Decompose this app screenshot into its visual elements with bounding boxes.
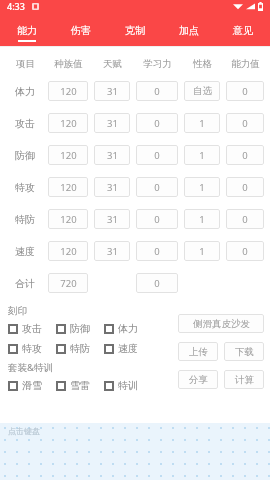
button[interactable]: 滑雪	[8, 379, 56, 392]
staticText: 下载	[235, 346, 254, 358]
staticText: 0	[242, 149, 248, 162]
staticText: 120	[60, 117, 77, 130]
button[interactable]: 特训	[104, 379, 152, 392]
staticText: 能力值	[231, 58, 260, 70]
staticText: 0	[154, 117, 160, 130]
button[interactable]: 0	[136, 273, 178, 293]
button[interactable]: 31	[94, 145, 130, 165]
button[interactable]: 720	[48, 273, 88, 293]
button[interactable]: 上传	[178, 342, 218, 361]
button[interactable]: 加点	[162, 19, 216, 46]
button[interactable]: 0	[226, 81, 264, 101]
button[interactable]: 1	[184, 209, 220, 229]
staticText: 31	[107, 149, 118, 162]
staticText: 31	[107, 213, 118, 226]
staticText: 0	[154, 245, 160, 258]
button[interactable]: 速度	[104, 342, 152, 355]
button[interactable]: 31	[94, 241, 130, 261]
button[interactable]: 31	[94, 177, 130, 197]
staticText: 侧滑真皮沙发	[193, 318, 250, 330]
staticText: 0	[242, 245, 248, 258]
staticText: 上传	[189, 346, 208, 358]
staticText: 克制	[125, 24, 145, 37]
staticText: 项目	[16, 58, 35, 70]
staticText: 120	[60, 213, 77, 226]
staticText: 点击键盘	[8, 426, 40, 436]
staticText: 0	[154, 277, 160, 290]
button[interactable]: 0	[136, 145, 178, 165]
staticText: 0	[154, 181, 160, 194]
staticText: 120	[60, 85, 77, 98]
staticText: 特训	[118, 379, 138, 392]
button[interactable]: 1	[184, 177, 220, 197]
button[interactable]: 0	[136, 241, 178, 261]
button[interactable]: 1	[184, 145, 220, 165]
staticText: 加点	[179, 24, 199, 37]
staticText: 速度	[118, 342, 138, 355]
button[interactable]: 0	[136, 177, 178, 197]
staticText: 分享	[189, 374, 208, 386]
staticText: 0	[242, 117, 248, 130]
button[interactable]: 1	[184, 113, 220, 133]
button[interactable]: 120	[48, 113, 88, 133]
staticText: 攻击	[22, 322, 42, 335]
button[interactable]: 自选	[184, 81, 220, 101]
staticText: 特防	[15, 213, 35, 226]
staticText: 特攻	[22, 342, 42, 355]
button[interactable]: 伤害	[54, 19, 108, 46]
staticText: 雪雷	[70, 379, 90, 392]
button[interactable]: 意见	[216, 19, 270, 46]
button[interactable]: 120	[48, 209, 88, 229]
staticText: 120	[60, 245, 77, 258]
button[interactable]: 0	[226, 113, 264, 133]
staticText: 速度	[15, 245, 35, 258]
staticText: 特防	[70, 342, 90, 355]
staticText: 31	[107, 85, 118, 98]
staticText: 120	[60, 181, 77, 194]
button[interactable]: 特防	[56, 342, 104, 355]
button[interactable]: 1	[184, 241, 220, 261]
staticText: 0	[154, 149, 160, 162]
button[interactable]: 31	[94, 113, 130, 133]
button[interactable]: 120	[48, 241, 88, 261]
staticText: 31	[107, 117, 118, 130]
button[interactable]: 克制	[108, 19, 162, 46]
button[interactable]: 防御	[56, 322, 104, 335]
button[interactable]: 体力	[104, 322, 152, 335]
staticText: 学习力	[143, 58, 172, 70]
button[interactable]: 0	[226, 145, 264, 165]
button[interactable]: 攻击	[8, 322, 56, 335]
button[interactable]: 0	[136, 81, 178, 101]
button[interactable]: 31	[94, 209, 130, 229]
staticText: 31	[107, 245, 118, 258]
button[interactable]: 0	[226, 209, 264, 229]
staticText: 性格	[193, 58, 212, 70]
staticText: 防御	[70, 322, 90, 335]
button[interactable]: 能力	[0, 19, 54, 46]
staticText: 自选	[193, 85, 212, 97]
button[interactable]: 侧滑真皮沙发	[178, 314, 264, 333]
staticText: 能力	[17, 24, 37, 37]
staticText: 1	[199, 149, 205, 162]
staticText: 合计	[15, 277, 35, 290]
button[interactable]: 120	[48, 81, 88, 101]
button[interactable]: 0	[136, 113, 178, 133]
button[interactable]: 0	[226, 241, 264, 261]
staticText: 天赋	[103, 58, 122, 70]
button[interactable]: 0	[136, 209, 178, 229]
button[interactable]: 分享	[178, 370, 218, 389]
button[interactable]: 120	[48, 177, 88, 197]
button[interactable]: 计算	[224, 370, 264, 389]
button[interactable]: 31	[94, 81, 130, 101]
staticText: 0	[242, 85, 248, 98]
staticText: 1	[199, 181, 205, 194]
staticText: 31	[107, 181, 118, 194]
button[interactable]: 下载	[224, 342, 264, 361]
staticText: 意见	[233, 24, 253, 37]
button[interactable]: 0	[226, 177, 264, 197]
button[interactable]: 特攻	[8, 342, 56, 355]
button[interactable]: 120	[48, 145, 88, 165]
button[interactable]: 雪雷	[56, 379, 104, 392]
staticText: 体力	[15, 85, 35, 98]
staticText: 防御	[15, 149, 35, 162]
